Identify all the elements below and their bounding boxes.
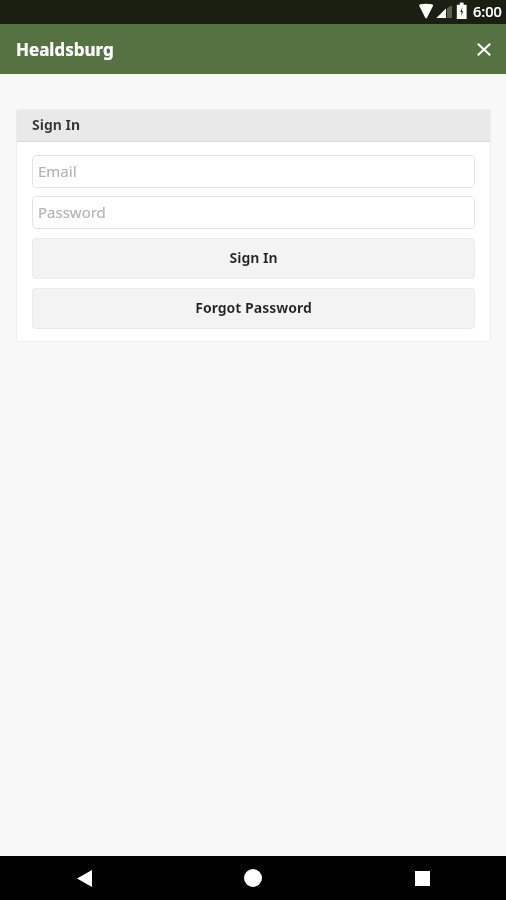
staticText: Forgot Password [195, 298, 312, 317]
button[interactable]: Recent apps [398, 856, 446, 900]
staticText: Sign In [229, 248, 278, 267]
button[interactable]: Email [32, 155, 475, 188]
button[interactable]: Password [32, 196, 475, 229]
staticText: Sign In [32, 115, 81, 134]
staticText: Password [38, 202, 106, 222]
button[interactable]: Home [229, 856, 277, 900]
button[interactable]: Forgot Password [32, 288, 475, 329]
staticText: Healdsburg [16, 38, 114, 61]
button[interactable]: Back [60, 856, 108, 900]
staticText: Email [38, 161, 77, 181]
staticText: 6:00 [473, 1, 502, 21]
button[interactable]: Sign In [32, 238, 475, 279]
button[interactable]: Close [464, 29, 504, 69]
